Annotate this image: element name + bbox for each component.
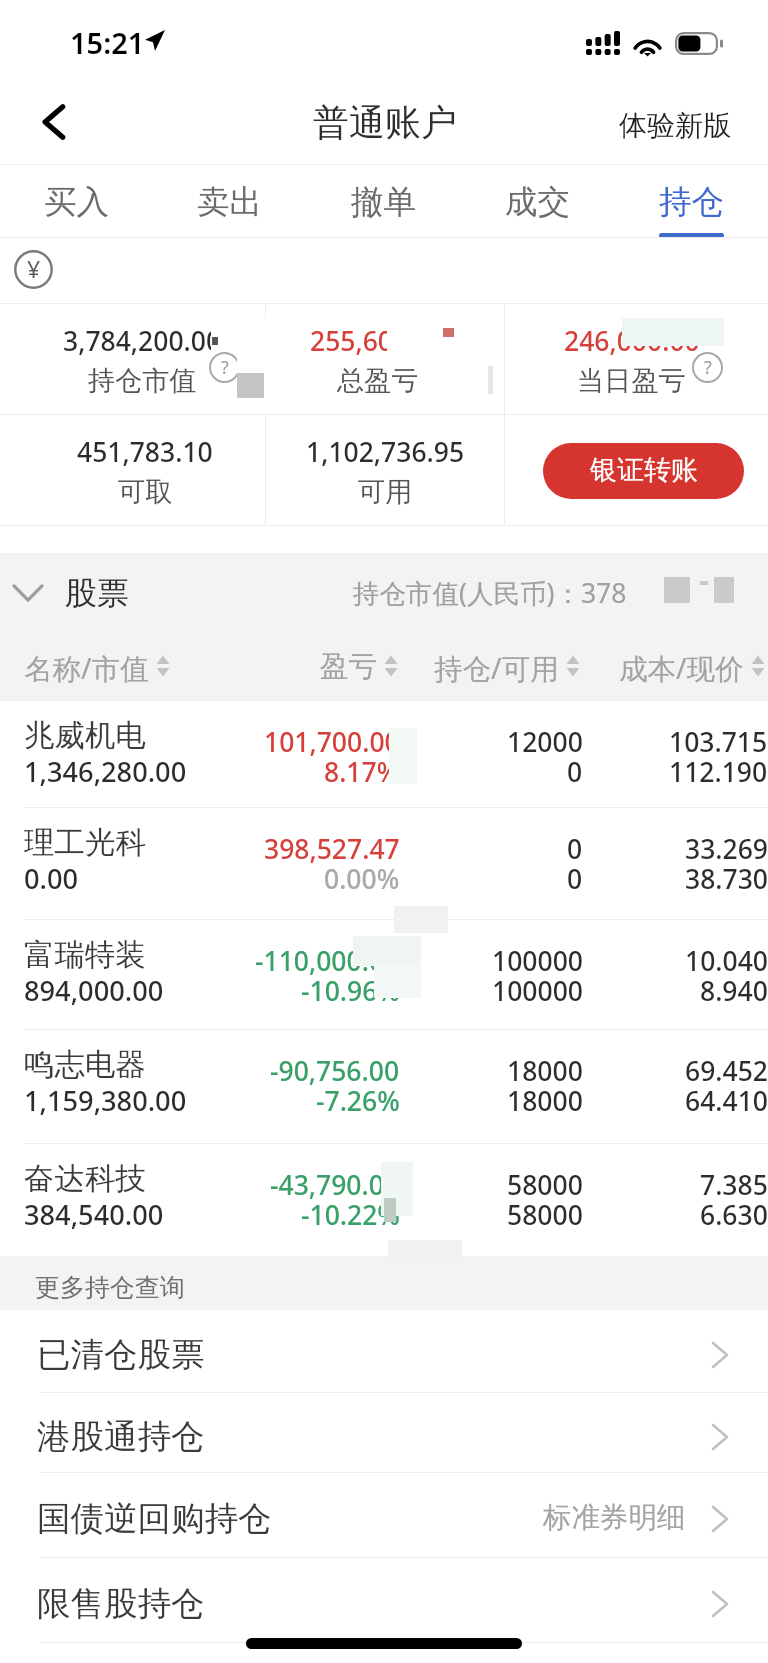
staticText: 普通账户: [313, 100, 457, 145]
staticText: 持仓/可用: [434, 649, 559, 683]
button[interactable]: 理工光科: [0, 808, 768, 919]
staticText: 101,700.00: [264, 724, 400, 760]
staticText: 名称/市值: [24, 649, 149, 683]
staticText: 18000: [507, 1053, 583, 1089]
staticText: 8.17%: [324, 754, 400, 790]
staticText: 已清仓股票: [37, 1334, 205, 1376]
button[interactable]: 限售股持仓: [0, 1558, 768, 1642]
staticText: 持仓市值(人民币)：378: [353, 575, 627, 611]
staticText: 可取: [118, 475, 173, 509]
staticText: ¥: [27, 253, 41, 284]
staticText: 6.630: [700, 1197, 768, 1233]
button[interactable]: 返回: [23, 92, 83, 152]
staticText: 当日盈亏: [577, 364, 686, 398]
staticText: 8.940: [700, 973, 768, 1009]
button[interactable]: 鸣志电器: [0, 1030, 768, 1143]
staticText: 持仓市值: [88, 364, 197, 398]
staticText: 58000: [507, 1197, 583, 1233]
staticText: 15:21: [70, 23, 145, 62]
staticText: 12000: [507, 724, 583, 760]
button[interactable]: 港股通持仓: [0, 1393, 768, 1472]
button[interactable]: 成交: [460, 165, 614, 237]
staticText: 0: [567, 861, 583, 897]
staticText: 18000: [507, 1083, 583, 1119]
staticText: 限售股持仓: [37, 1583, 205, 1625]
staticText: 0.00: [24, 860, 79, 897]
button[interactable]: 撤单: [306, 165, 460, 237]
staticText: 246,000.00: [564, 323, 700, 359]
button[interactable]: 持仓/可用: [434, 649, 580, 683]
staticText: 58000: [507, 1167, 583, 1203]
staticText: 可用: [358, 475, 413, 509]
staticText: -10.22%: [301, 1197, 400, 1233]
staticText: 买入: [44, 182, 109, 223]
button[interactable]: 已清仓股票: [0, 1310, 768, 1392]
button[interactable]: 名称/市值: [24, 649, 170, 683]
staticText: -10.96%: [301, 973, 400, 1009]
button[interactable]: 成本/现价: [619, 649, 765, 683]
button[interactable]: 富瑞特装: [0, 920, 768, 1029]
button[interactable]: 体验新版: [596, 88, 768, 164]
staticText: 股票: [65, 573, 129, 613]
button[interactable]: 买入: [0, 165, 153, 237]
button[interactable]: 国债逆回购持仓: [0, 1473, 768, 1557]
staticText: -7.26%: [316, 1083, 400, 1119]
button[interactable]: 币种切换: [14, 250, 53, 289]
staticText: 卖出: [197, 182, 262, 223]
button[interactable]: 盈亏: [320, 649, 398, 683]
staticText: 富瑞特装: [24, 936, 146, 974]
staticText: 10.040: [685, 943, 768, 979]
staticText: 100000: [492, 973, 583, 1009]
staticText: 384,540.00: [24, 1196, 164, 1233]
button[interactable]: 银证转账: [543, 443, 744, 499]
staticText: 鸣志电器: [24, 1046, 146, 1084]
staticText: 112.190: [669, 754, 768, 790]
staticText: 7.385: [700, 1167, 768, 1203]
staticText: 3,784,200.00: [63, 323, 222, 359]
staticText: 0: [567, 831, 583, 867]
staticText: 更多持仓查询: [35, 1272, 185, 1303]
staticText: 成本/现价: [619, 649, 744, 683]
staticText: 64.410: [685, 1083, 768, 1119]
staticText: 255,600.00: [310, 323, 446, 359]
staticText: 100000: [492, 943, 583, 979]
staticText: 持仓: [659, 182, 724, 223]
staticText: -43,790.00: [270, 1167, 400, 1203]
staticText: ?: [221, 355, 229, 379]
staticText: 标准券明细: [543, 1500, 686, 1536]
staticText: 38.730: [685, 861, 768, 897]
staticText: 成交: [505, 182, 570, 223]
staticText: 451,783.10: [77, 434, 213, 470]
staticText: 398,527.47: [264, 831, 400, 867]
staticText: 奋达科技: [24, 1160, 146, 1198]
button[interactable]: 奋达科技: [0, 1144, 768, 1256]
staticText: 0: [567, 754, 583, 790]
button[interactable]: 卖出: [153, 165, 306, 237]
staticText: 兆威机电: [24, 717, 146, 755]
staticText: 0.00%: [324, 861, 400, 897]
button[interactable]: 股票: [14, 571, 129, 615]
staticText: 港股通持仓: [37, 1416, 205, 1458]
staticText: 69.452: [685, 1053, 768, 1089]
staticText: 银证转账: [590, 453, 698, 487]
staticText: 33.269: [685, 831, 768, 867]
staticText: 盈亏: [320, 649, 377, 683]
staticText: 1,102,736.95: [306, 434, 465, 470]
staticText: 理工光科: [24, 824, 146, 862]
staticText: 撤单: [351, 182, 416, 223]
staticText: -110,000.00: [255, 943, 400, 979]
staticText: 1,346,280.00: [24, 753, 187, 790]
button[interactable]: 兆威机电: [0, 701, 768, 807]
staticText: 总盈亏: [337, 364, 419, 398]
staticText: 国债逆回购持仓: [37, 1498, 272, 1540]
staticText: ?: [704, 355, 712, 379]
staticText: 体验新版: [619, 108, 731, 143]
staticText: 1,159,380.00: [24, 1082, 187, 1119]
staticText: -90,756.00: [270, 1053, 400, 1089]
staticText: 0: [667, 575, 683, 611]
staticText: 103.715: [669, 724, 768, 760]
staticText: 894,000.00: [24, 972, 164, 1009]
button[interactable]: 持仓: [614, 165, 768, 237]
